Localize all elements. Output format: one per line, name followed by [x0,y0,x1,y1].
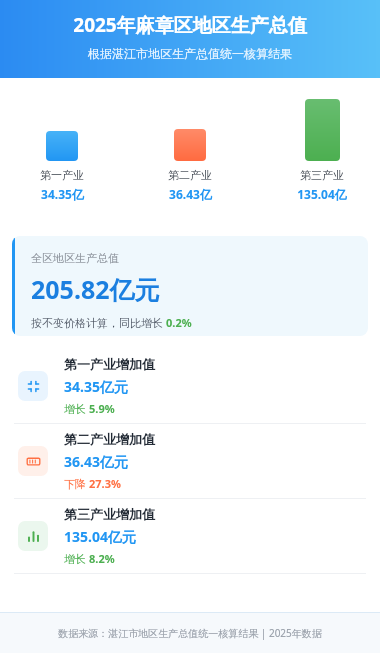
staticText: 135.04亿 [297,186,347,202]
staticText: 增长 [64,401,89,416]
staticText: 2025年麻章区地区生产总值 [73,12,307,38]
staticText: 205.82亿元 [31,272,160,306]
staticText: 第一产业 [40,168,84,182]
staticText: 全区地区生产总值 [31,251,119,265]
staticText: 0.2% [166,315,192,330]
staticText: 5.9% [89,401,115,416]
button[interactable]: 全区地区生产总值 [12,236,368,336]
button[interactable]: Secondary industry value [0,424,380,498]
other: Tertiary industry value [18,521,48,551]
staticText: 34.35亿元 [64,377,128,396]
staticText: 数据来源：湛江市地区生产总值统一核算结果 | 2025年数据 [58,626,322,640]
staticText: 8.2% [89,551,115,566]
staticText: 增长 [64,551,89,566]
staticText: 第一产业增加值 [64,356,155,372]
button[interactable]: Primary industry value [0,349,380,423]
staticText: 第二产业增加值 [64,431,155,447]
button[interactable]: Tertiary industry value [0,499,380,573]
staticText: 按不变价格计算，同比增长 [31,315,166,330]
staticText: 下降 [64,476,89,491]
button[interactable]: 第一产业 [14,78,110,202]
staticText: 第二产业 [168,168,212,182]
staticText: 27.3% [89,476,121,491]
other: Secondary industry value [18,446,48,476]
staticText: 36.43亿 [169,186,212,202]
staticText: 根据湛江市地区生产总值统一核算结果 [88,46,292,61]
staticText: 第三产业 [300,168,344,182]
staticText: 135.04亿元 [64,527,136,546]
staticText: 第三产业增加值 [64,506,155,522]
staticText: 36.43亿元 [64,452,128,471]
button[interactable]: 第三产业 [274,78,370,202]
staticText: 34.35亿 [41,186,84,202]
other: Primary industry value [18,371,48,401]
button[interactable]: 第二产业 [142,78,238,202]
